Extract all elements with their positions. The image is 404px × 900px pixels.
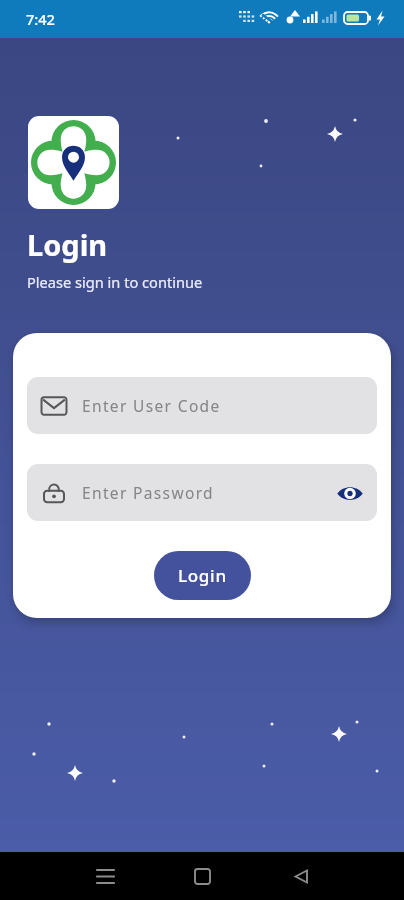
button[interactable]: Enter Password — [27, 464, 377, 521]
staticText: Please sign in to continue — [27, 272, 203, 292]
staticText: Enter Password — [82, 482, 214, 503]
button[interactable]: Recent apps — [81, 852, 129, 900]
staticText: 7:42 — [26, 9, 55, 29]
staticText: Enter User Code — [82, 395, 221, 416]
button[interactable]: Login — [154, 551, 251, 600]
button[interactable]: Home — [178, 852, 226, 900]
button[interactable]: Show password — [335, 478, 365, 508]
button[interactable]: Enter User Code — [27, 377, 377, 434]
staticText: Login — [178, 564, 227, 587]
button[interactable]: Back — [277, 852, 325, 900]
staticText: Login — [27, 225, 108, 264]
